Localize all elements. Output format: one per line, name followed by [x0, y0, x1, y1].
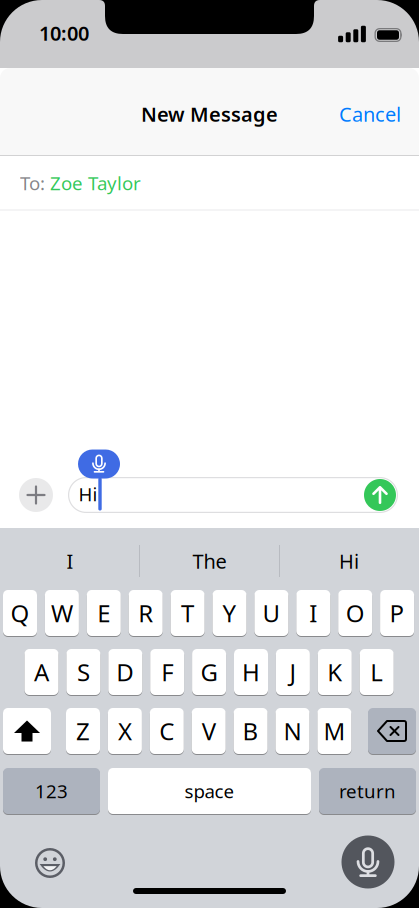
staticText: 123	[35, 779, 68, 803]
button[interactable]: K	[318, 648, 352, 695]
staticText: return	[339, 779, 396, 803]
button[interactable]: C	[150, 707, 184, 754]
button[interactable]: 123	[3, 767, 100, 814]
staticText: I	[309, 597, 317, 629]
button[interactable]: F	[150, 648, 184, 695]
button[interactable]: Send	[364, 479, 396, 511]
staticText: D	[116, 656, 134, 688]
button[interactable]: O	[338, 589, 372, 636]
staticText: Y	[222, 597, 236, 629]
staticText: O	[346, 597, 365, 629]
button[interactable]: T	[171, 589, 205, 636]
staticText: space	[184, 779, 234, 803]
staticText: G	[201, 656, 218, 688]
staticText: K	[327, 656, 342, 688]
button[interactable]: Emoji	[35, 848, 65, 878]
staticText: P	[390, 597, 405, 629]
button[interactable]: M	[317, 707, 351, 754]
staticText: M	[323, 715, 345, 747]
button[interactable]: Dictate	[341, 835, 394, 888]
staticText: L	[370, 656, 383, 688]
staticText: Q	[10, 597, 29, 629]
staticText: New Message	[141, 101, 278, 127]
button[interactable]: W	[45, 589, 79, 636]
button[interactable]: V	[192, 707, 226, 754]
button[interactable]: B	[234, 707, 268, 754]
staticText: F	[161, 656, 173, 688]
staticText: Hi	[78, 482, 97, 506]
staticText: B	[243, 715, 259, 747]
staticText: A	[34, 656, 49, 688]
button[interactable]: G	[192, 648, 226, 695]
staticText: V	[202, 715, 216, 747]
button[interactable]: To:	[0, 156, 419, 210]
button[interactable]: P	[380, 589, 414, 636]
button[interactable]: S	[66, 648, 100, 695]
staticText: To:	[20, 171, 45, 195]
staticText: I	[66, 548, 73, 574]
button[interactable]: I	[296, 589, 330, 636]
staticText: The	[192, 548, 226, 574]
staticText: Zoe Taylor	[50, 171, 141, 195]
staticText: U	[262, 597, 280, 629]
button[interactable]: Y	[212, 589, 246, 636]
button[interactable]: Add attachment	[19, 478, 53, 512]
button[interactable]: H	[234, 648, 268, 695]
button[interactable]: Z	[66, 707, 100, 754]
button[interactable]: E	[87, 589, 121, 636]
button[interactable]: Cancel	[339, 101, 401, 127]
staticText: E	[97, 597, 110, 629]
button[interactable]: L	[360, 648, 394, 695]
button[interactable]: Dictation	[78, 449, 120, 478]
staticText: C	[159, 715, 174, 747]
staticText: N	[283, 715, 301, 747]
staticText: Hi	[339, 548, 359, 574]
staticText: Z	[76, 715, 90, 747]
button[interactable]: return	[319, 767, 416, 814]
button[interactable]: D	[108, 648, 142, 695]
button[interactable]: Delete	[368, 708, 416, 754]
button[interactable]: X	[108, 707, 142, 754]
staticText: S	[77, 656, 90, 688]
button[interactable]: R	[129, 589, 163, 636]
staticText: Cancel	[339, 101, 401, 127]
staticText: H	[242, 656, 260, 688]
button[interactable]: A	[24, 648, 58, 695]
button[interactable]: Shift	[3, 708, 51, 754]
button[interactable]: space	[108, 767, 311, 814]
staticText: R	[138, 597, 153, 629]
staticText: X	[118, 715, 132, 747]
staticText: J	[289, 656, 296, 688]
button[interactable]: N	[275, 707, 309, 754]
staticText: 10:00	[39, 20, 89, 46]
staticText: W	[51, 597, 73, 629]
button[interactable]: Q	[3, 589, 37, 636]
button[interactable]: J	[276, 648, 310, 695]
button[interactable]: U	[254, 589, 288, 636]
staticText: T	[181, 597, 194, 629]
